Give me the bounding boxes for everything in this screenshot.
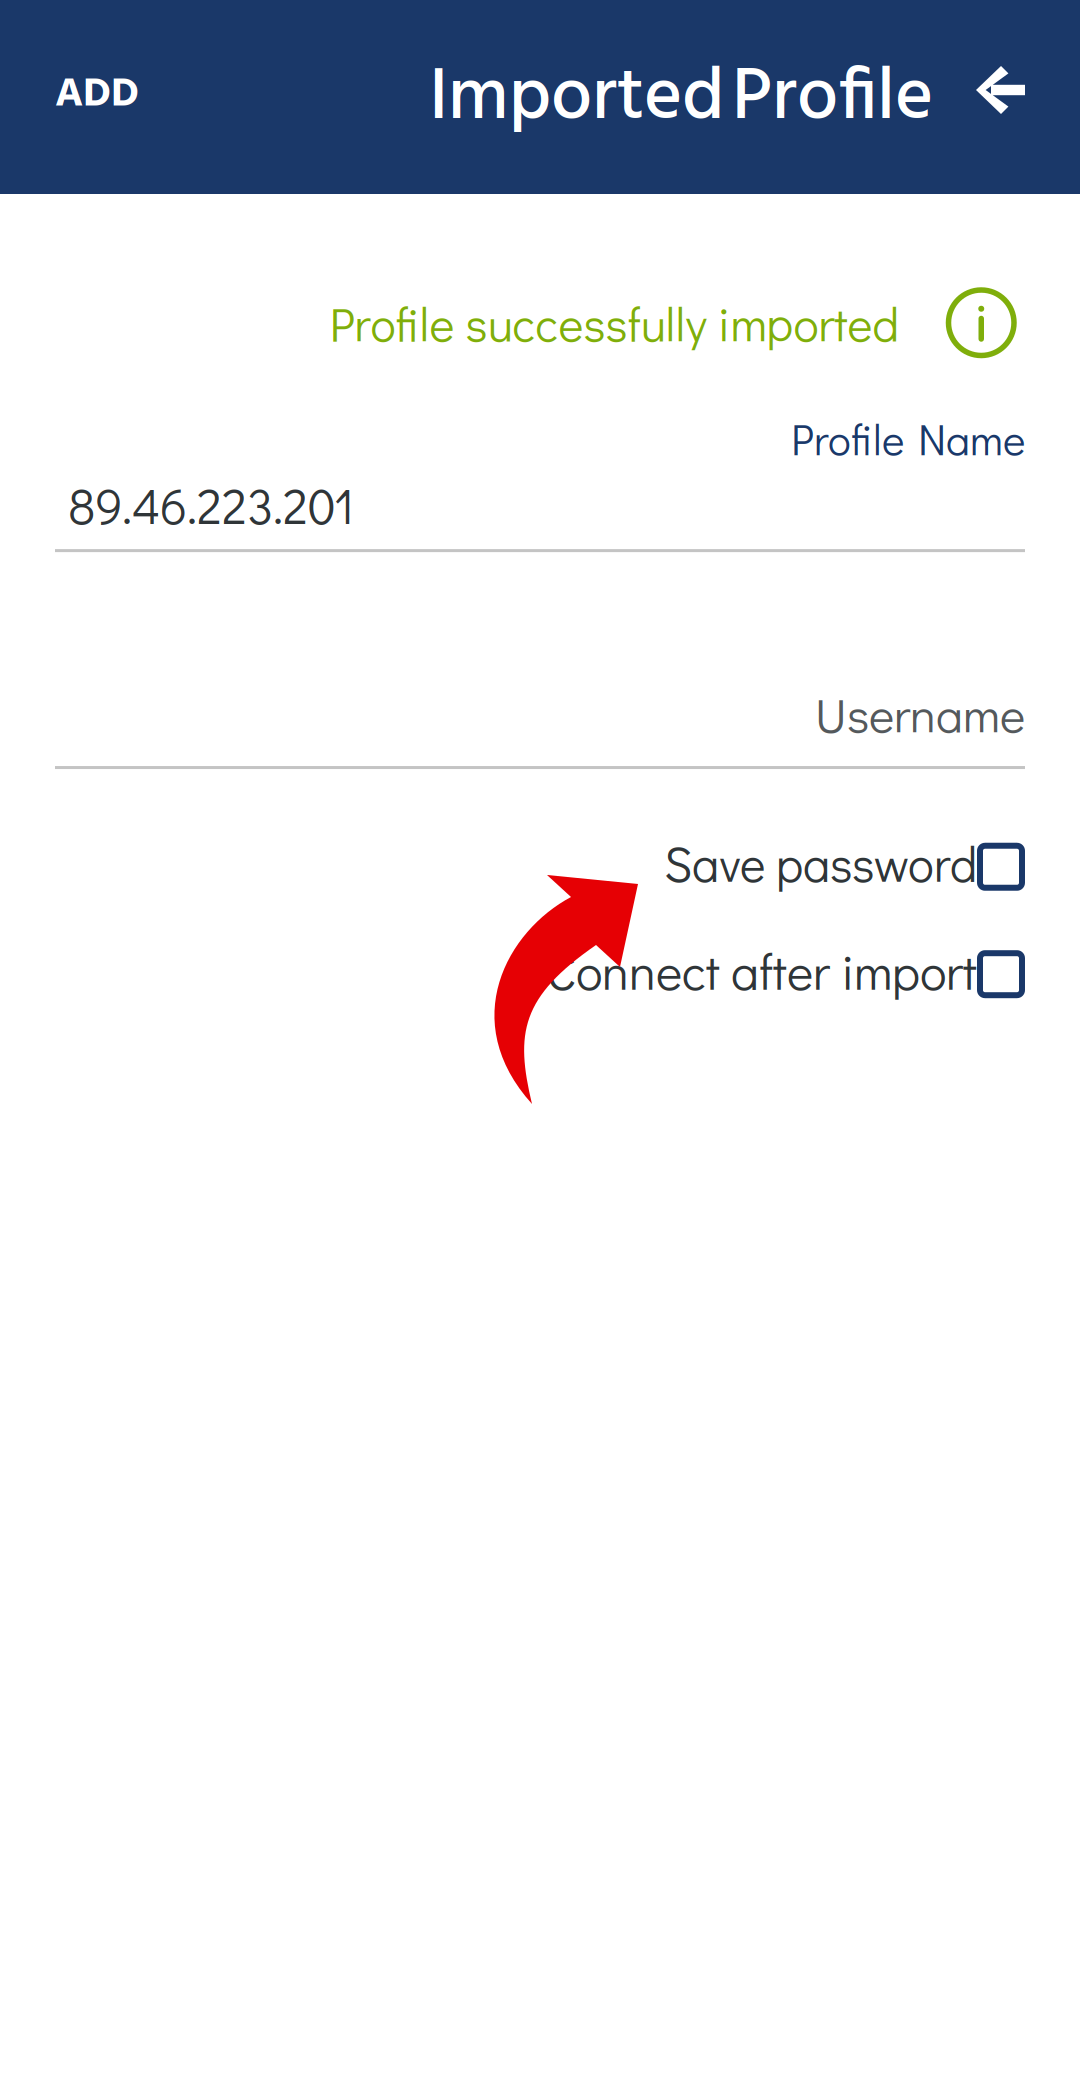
staticText: Imported — [429, 41, 724, 158]
staticText: Save password — [664, 831, 977, 894]
button[interactable]: Back — [963, 52, 1038, 141]
staticText: Username — [815, 682, 1025, 745]
staticText: Connect after import — [546, 937, 977, 1003]
staticText: ADD — [55, 62, 139, 128]
staticText: Profile — [791, 410, 904, 466]
button[interactable]: Connect after import — [546, 937, 1025, 1011]
button[interactable]: Save password — [664, 831, 1025, 902]
staticText: Name — [918, 410, 1025, 466]
staticText: Profile successfully imported — [329, 292, 899, 354]
button[interactable]: ADD — [0, 36, 167, 158]
staticText: Profile — [732, 41, 933, 158]
staticText: 89.46.223.201 — [68, 472, 354, 537]
